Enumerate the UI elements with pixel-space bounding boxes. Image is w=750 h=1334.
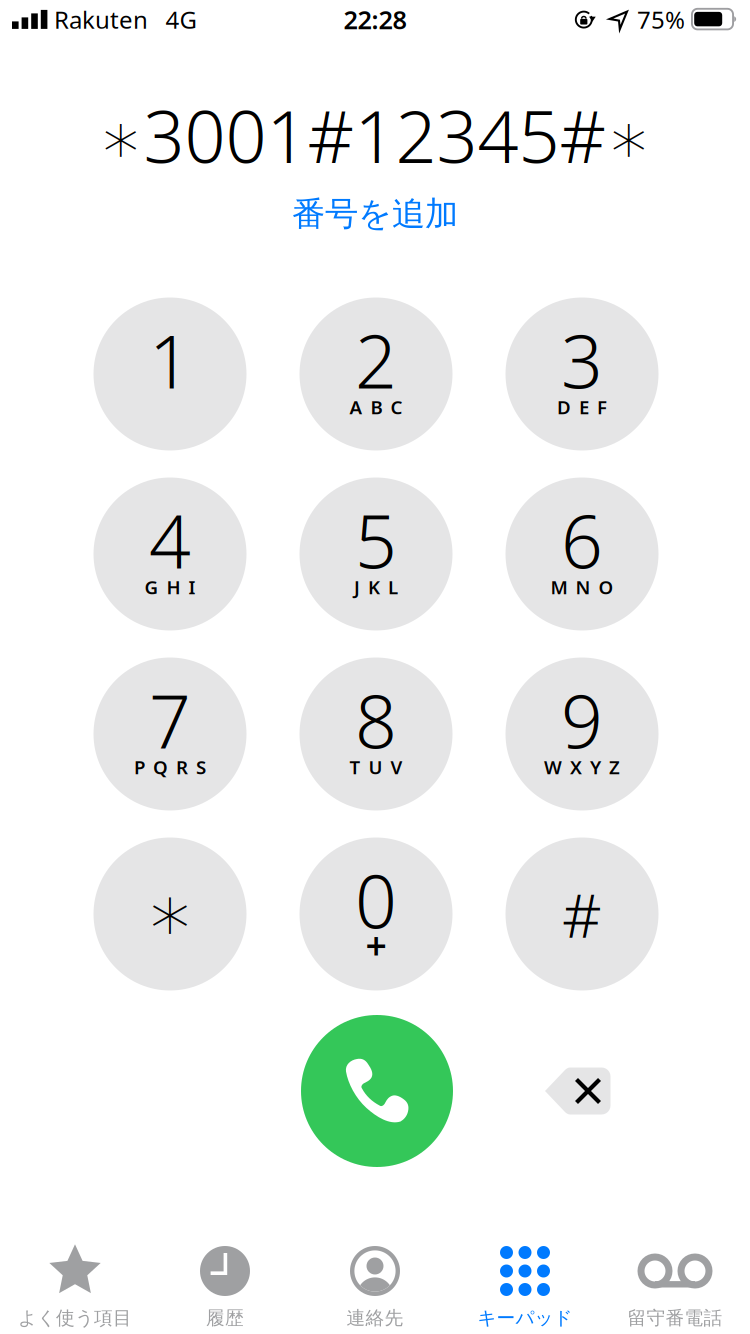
staticText: GHI: [144, 575, 195, 599]
button[interactable]: 5: [299, 477, 452, 630]
staticText: よく使う項目: [18, 1306, 132, 1329]
button[interactable]: 7: [93, 657, 246, 810]
staticText: TUV: [349, 755, 402, 779]
staticText: 4G: [165, 4, 196, 35]
button[interactable]: 3: [505, 297, 658, 450]
staticText: +: [365, 920, 386, 970]
staticText: PQRS: [134, 755, 206, 779]
staticText: #: [562, 873, 602, 955]
button[interactable]: キーパッド: [450, 1238, 600, 1334]
button[interactable]: 9: [505, 657, 658, 810]
staticText: 5: [355, 491, 397, 589]
button[interactable]: 6: [505, 477, 658, 630]
button[interactable]: #: [505, 837, 658, 990]
button[interactable]: 1: [93, 297, 246, 450]
staticText: ABC: [349, 395, 402, 419]
button[interactable]: 2: [299, 297, 452, 450]
button[interactable]: 番号を追加: [276, 185, 474, 242]
staticText: 75%: [637, 4, 685, 35]
button[interactable]: よく使う項目: [0, 1238, 150, 1334]
button[interactable]: 履歴: [150, 1238, 300, 1334]
staticText: 1: [149, 311, 191, 409]
staticText: 留守番電話: [627, 1306, 722, 1329]
staticText: 9: [561, 671, 603, 769]
staticText: 7: [149, 671, 191, 769]
button[interactable]: ∗: [93, 837, 246, 990]
button[interactable]: 0: [299, 837, 452, 990]
staticText: ∗3001#12345#∗: [98, 87, 651, 183]
staticText: 番号を追加: [292, 193, 458, 234]
staticText: 8: [355, 671, 397, 769]
button[interactable]: 8: [299, 657, 452, 810]
staticText: 6: [561, 491, 603, 589]
staticText: MNO: [550, 575, 613, 599]
staticText: Rakuten: [54, 4, 148, 35]
button[interactable]: 留守番電話: [600, 1238, 750, 1334]
staticText: 連絡先: [346, 1306, 403, 1329]
staticText: 2: [355, 311, 397, 409]
staticText: ∗: [145, 868, 195, 958]
button[interactable]: 連絡先: [300, 1238, 450, 1334]
button[interactable]: 発信: [301, 1015, 453, 1167]
staticText: DEF: [557, 395, 607, 419]
staticText: 22:28: [343, 3, 406, 36]
button[interactable]: 4: [93, 477, 246, 630]
staticText: JKL: [354, 575, 398, 599]
staticText: 履歴: [206, 1306, 244, 1329]
button[interactable]: 削除: [523, 1036, 633, 1146]
staticText: 0: [355, 851, 397, 949]
staticText: 3: [561, 311, 603, 409]
staticText: 4: [149, 491, 191, 589]
staticText: キーパッド: [477, 1306, 572, 1329]
staticText: WXYZ: [544, 755, 620, 779]
